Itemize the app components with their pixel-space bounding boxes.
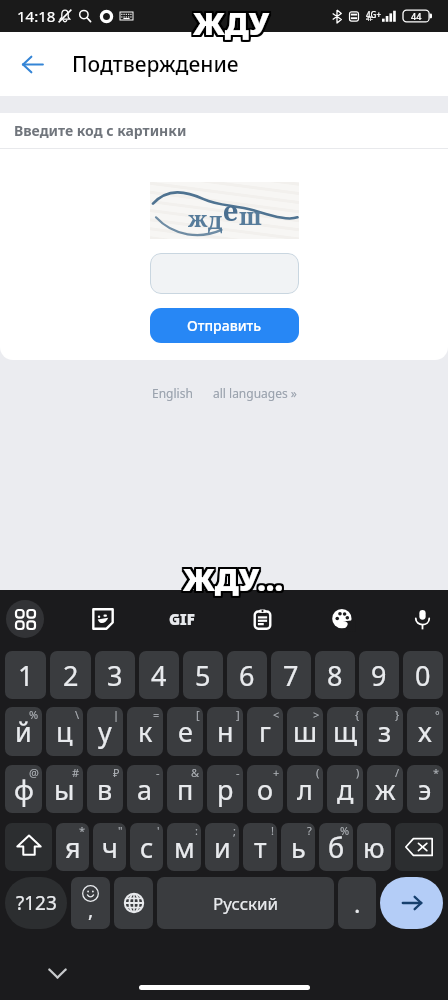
staticText: ЖДУ... bbox=[182, 558, 283, 599]
staticText: ЖДУ... bbox=[182, 560, 283, 601]
button[interactable]: а bbox=[127, 765, 163, 813]
button[interactable]: т bbox=[243, 823, 277, 871]
button[interactable]: Change language bbox=[114, 877, 153, 929]
button[interactable]: в bbox=[87, 765, 123, 813]
button[interactable]: я bbox=[56, 823, 89, 871]
button[interactable]: 2 bbox=[50, 651, 91, 699]
button[interactable]: й bbox=[5, 707, 42, 756]
button[interactable]: ю bbox=[357, 823, 391, 871]
staticText: п bbox=[177, 771, 194, 808]
button[interactable]: 5 bbox=[183, 651, 223, 699]
button[interactable]: Voice input bbox=[402, 599, 442, 639]
button[interactable]: GIF bbox=[162, 599, 202, 639]
button[interactable]: 1 bbox=[5, 651, 46, 699]
button[interactable]: с bbox=[130, 823, 163, 871]
button[interactable]: . bbox=[338, 877, 376, 929]
button[interactable] bbox=[150, 253, 299, 294]
staticText: < bbox=[273, 707, 280, 722]
staticText: х bbox=[418, 713, 432, 750]
button[interactable]: Clipboard bbox=[242, 599, 282, 639]
staticText: Подтверждение bbox=[72, 50, 239, 79]
button[interactable]: Enter bbox=[380, 877, 443, 929]
button[interactable]: all languages » bbox=[209, 381, 301, 405]
staticText: ° bbox=[435, 707, 440, 722]
button[interactable]: э bbox=[407, 765, 443, 813]
button[interactable]: р bbox=[207, 765, 243, 813]
button[interactable]: г bbox=[247, 707, 283, 756]
button[interactable]: у bbox=[87, 707, 123, 756]
button[interactable]: е bbox=[167, 707, 203, 756]
staticText: ш bbox=[239, 199, 262, 232]
staticText: ЖДУ bbox=[191, 4, 268, 45]
staticText: ЖДУ... bbox=[184, 560, 285, 601]
button[interactable]: к bbox=[127, 707, 163, 756]
staticText: ч bbox=[102, 829, 118, 866]
staticText: а bbox=[137, 771, 153, 808]
staticText: } bbox=[395, 707, 400, 722]
staticText: ь bbox=[291, 829, 306, 866]
button[interactable]: Stickers bbox=[83, 599, 123, 639]
button[interactable]: ы bbox=[46, 765, 83, 813]
button[interactable]: Backspace bbox=[395, 823, 443, 871]
button[interactable]: б bbox=[319, 823, 353, 871]
button[interactable]: Emoji bbox=[71, 877, 110, 929]
button[interactable]: ч bbox=[93, 823, 126, 871]
staticText: ЖДУ bbox=[194, 3, 271, 44]
staticText: и bbox=[214, 829, 231, 866]
button[interactable]: ш bbox=[287, 707, 323, 756]
button[interactable]: щ bbox=[327, 707, 363, 756]
staticText: " bbox=[118, 823, 123, 838]
button[interactable]: 8 bbox=[315, 651, 355, 699]
staticText: ы bbox=[54, 771, 75, 808]
staticText: ЖДУ bbox=[192, 1, 269, 42]
staticText: \ bbox=[75, 707, 80, 722]
button[interactable]: н bbox=[207, 707, 243, 756]
button[interactable]: ?123 bbox=[5, 877, 67, 929]
button[interactable]: 4 bbox=[139, 651, 179, 699]
staticText: 9 bbox=[371, 657, 387, 694]
button[interactable]: п bbox=[167, 765, 203, 813]
button[interactable]: д bbox=[327, 765, 363, 813]
button[interactable]: Hide keyboard bbox=[39, 955, 75, 991]
button[interactable]: х bbox=[407, 707, 443, 756]
staticText: ЖДУ... bbox=[184, 558, 285, 599]
button[interactable]: о bbox=[247, 765, 283, 813]
staticText: у bbox=[98, 713, 112, 750]
staticText: { bbox=[355, 707, 360, 722]
staticText: ЖДУ... bbox=[185, 560, 286, 601]
button[interactable]: Shift bbox=[5, 823, 52, 871]
staticText: ЖДУ bbox=[192, 2, 269, 43]
staticText: * bbox=[433, 765, 440, 780]
button[interactable]: м bbox=[167, 823, 201, 871]
button[interactable]: ж bbox=[367, 765, 403, 813]
button[interactable]: 0 bbox=[403, 651, 443, 699]
staticText: 2 bbox=[63, 657, 79, 694]
button[interactable]: Apps bbox=[6, 600, 44, 638]
staticText: Русский bbox=[213, 892, 279, 915]
button[interactable]: 3 bbox=[95, 651, 135, 699]
button[interactable]: л bbox=[287, 765, 323, 813]
button[interactable]: ф bbox=[5, 765, 42, 813]
button[interactable]: ь bbox=[281, 823, 315, 871]
button[interactable]: Theme bbox=[322, 599, 362, 639]
button[interactable]: з bbox=[367, 707, 403, 756]
button[interactable]: и bbox=[205, 823, 239, 871]
staticText: ю bbox=[363, 829, 385, 866]
staticText: л bbox=[297, 771, 313, 808]
staticText: * bbox=[79, 823, 86, 838]
button[interactable]: Отправить bbox=[150, 308, 299, 343]
staticText: о bbox=[257, 771, 274, 808]
button[interactable]: Back bbox=[0, 32, 64, 96]
staticText: ЖДУ... bbox=[183, 557, 284, 598]
button[interactable]: English bbox=[148, 381, 197, 405]
button[interactable]: Русский bbox=[157, 877, 334, 929]
button[interactable]: 6 bbox=[227, 651, 267, 699]
staticText: English bbox=[152, 385, 193, 401]
staticText: ( bbox=[316, 765, 320, 780]
staticText: ! bbox=[271, 823, 274, 838]
button[interactable]: ц bbox=[46, 707, 83, 756]
button[interactable]: 9 bbox=[359, 651, 399, 699]
staticText: э bbox=[418, 771, 432, 808]
staticText: ф bbox=[14, 771, 34, 808]
button[interactable]: 7 bbox=[271, 651, 311, 699]
